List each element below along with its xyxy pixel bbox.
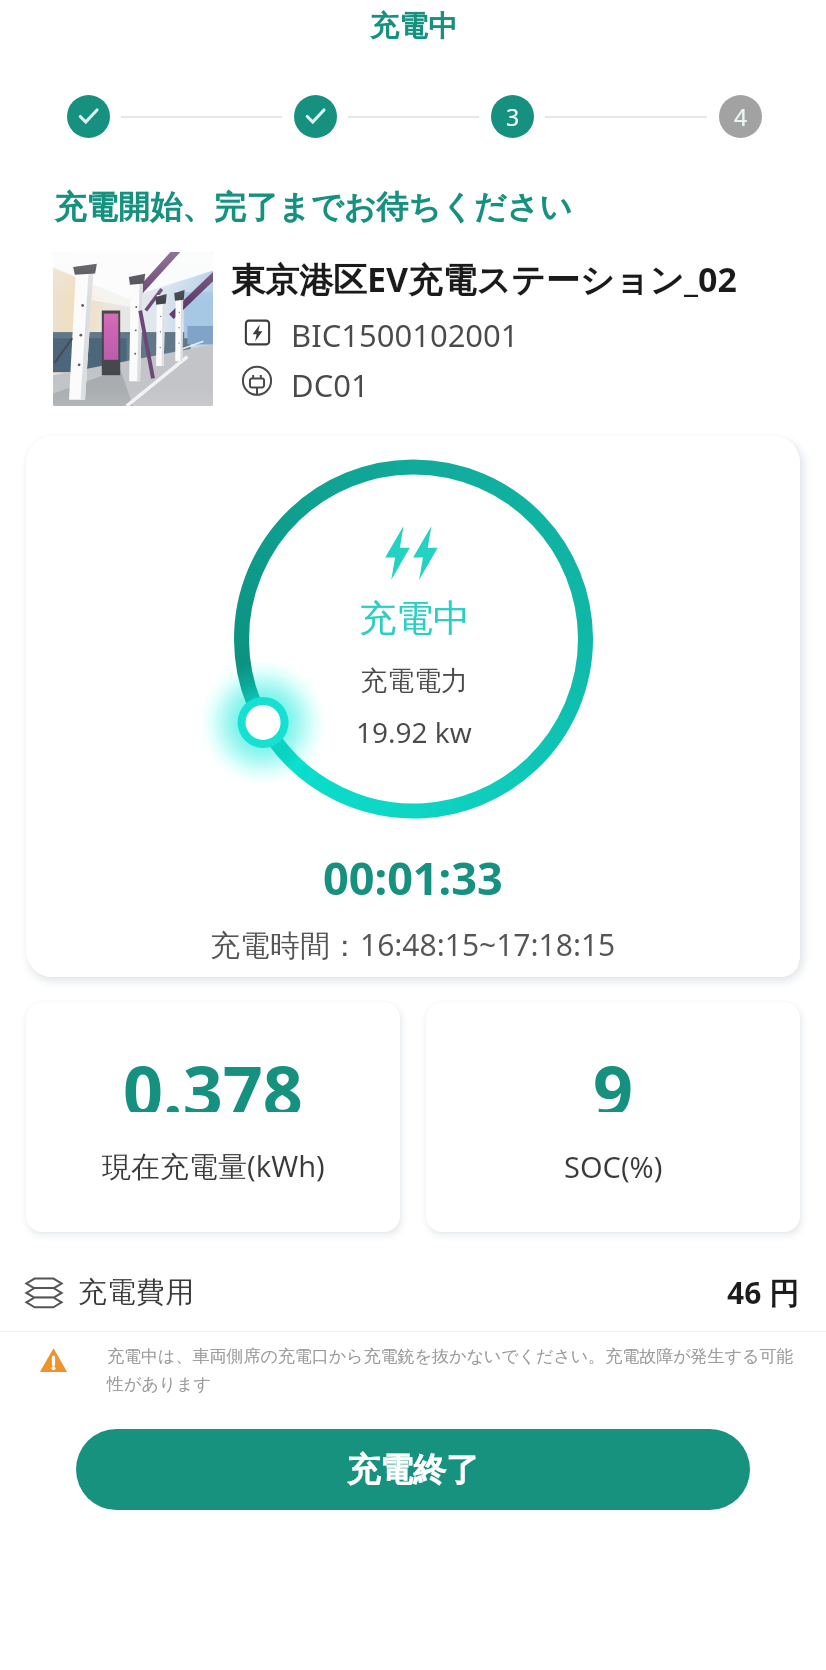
staticText: 3 bbox=[506, 101, 520, 132]
staticText: 充電中は、車両側席の充電口から充電銃を抜かないでください。充電故障が発生する可能… bbox=[107, 1346, 796, 1395]
staticText: 00:01:33 bbox=[323, 847, 503, 895]
staticText: 0.378 bbox=[123, 1042, 303, 1112]
staticText: 19.92 kw bbox=[356, 713, 472, 751]
staticText: 充電費用 bbox=[78, 1274, 194, 1311]
staticText: BIC1500102001 bbox=[291, 314, 519, 350]
staticText: 充電中 bbox=[370, 8, 457, 45]
button[interactable]: Charging station photo bbox=[53, 252, 213, 406]
staticText: DC01 bbox=[291, 364, 369, 400]
button[interactable]: 9 bbox=[426, 1002, 800, 1232]
staticText: 充電中 bbox=[359, 595, 470, 639]
staticText: 4 bbox=[734, 101, 748, 132]
staticText: 東京港区EV充電ステーション_02 bbox=[231, 256, 737, 300]
staticText: 9 bbox=[593, 1042, 634, 1112]
staticText: SOC(%) bbox=[564, 1147, 663, 1186]
button[interactable]: Step 2 bbox=[294, 95, 337, 138]
button[interactable]: 充電終了 bbox=[76, 1429, 750, 1510]
staticText: 現在充電量(kWh) bbox=[102, 1146, 325, 1186]
button[interactable]: Step 3 bbox=[491, 95, 534, 138]
button[interactable]: 0.378 bbox=[26, 1002, 400, 1232]
staticText: 充電時間：16:48:15~17:18:15 bbox=[210, 924, 616, 964]
button[interactable]: Step 4 bbox=[719, 95, 762, 138]
button[interactable]: Step 1 bbox=[67, 95, 110, 138]
staticText: 46 円 bbox=[727, 1272, 800, 1313]
staticText: 充電終了 bbox=[347, 1449, 479, 1491]
button[interactable]: 充電費用 bbox=[26, 1264, 800, 1320]
staticText: 充電電力 bbox=[360, 664, 468, 698]
staticText: 充電開始、完了までお待ちください bbox=[54, 187, 572, 227]
